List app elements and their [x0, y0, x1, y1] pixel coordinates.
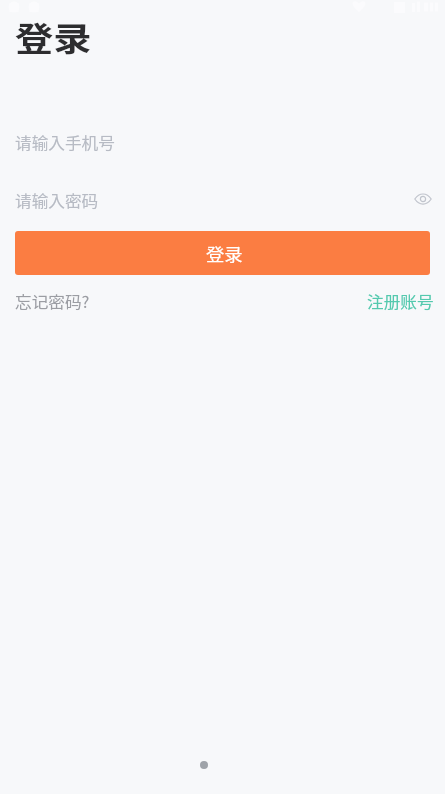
staticText: 注册账号	[367, 289, 435, 312]
button[interactable]: 登录	[15, 231, 430, 275]
staticText: 登录	[15, 13, 92, 61]
staticText: 请输入密码	[15, 188, 99, 211]
staticText: 忘记密码?	[15, 289, 90, 312]
button[interactable]: 注册账号	[357, 280, 445, 320]
staticText: 登录	[206, 241, 243, 266]
button[interactable]: 请输入手机号	[0, 117, 445, 165]
button[interactable]: 忘记密码?	[0, 280, 97, 320]
button[interactable]: Show password	[409, 185, 437, 213]
staticText: 请输入手机号	[15, 130, 116, 153]
button[interactable]: 请输入密码	[0, 175, 445, 223]
